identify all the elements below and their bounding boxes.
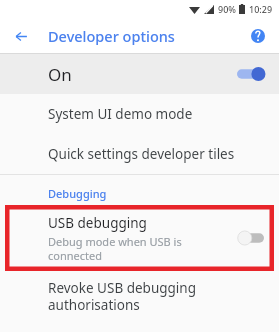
button[interactable]: Back <box>8 23 34 49</box>
staticText: Revoke USB debugging authorisations <box>48 279 219 314</box>
button[interactable]: On <box>0 54 279 94</box>
staticText: 10:29 <box>249 3 273 15</box>
button[interactable]: System UI demo mode <box>0 94 279 134</box>
staticText: Debug mode when USB is connected <box>48 234 216 263</box>
staticText: USB debugging <box>48 214 147 232</box>
staticText: On <box>48 63 72 86</box>
button[interactable]: Help <box>245 23 271 49</box>
staticText: Quick settings developer tiles <box>48 145 235 163</box>
button[interactable]: Revoke USB debugging authorisations <box>0 271 279 321</box>
staticText: System UI demo mode <box>48 105 193 123</box>
staticText: Debugging <box>48 186 107 201</box>
staticText: Developer options <box>48 26 175 46</box>
button[interactable]: Quick settings developer tiles <box>0 134 279 174</box>
button[interactable]: USB debugging <box>5 205 274 271</box>
staticText: 90% <box>218 3 236 15</box>
